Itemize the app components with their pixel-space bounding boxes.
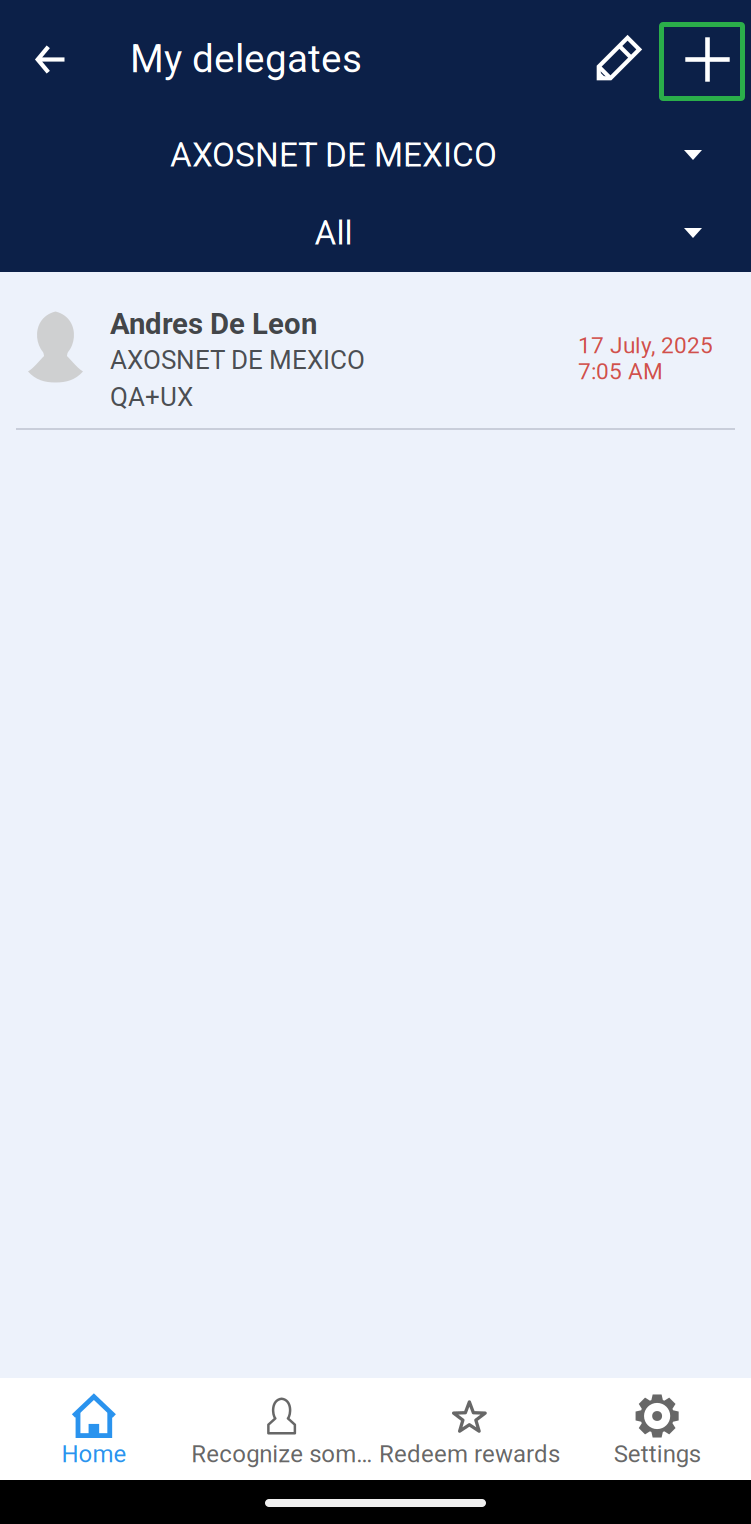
staticText: Andres De Leon: [110, 307, 317, 341]
staticText: AXOSNET DE MEXICO: [110, 345, 365, 375]
button[interactable]: Redeem rewards: [375, 1378, 563, 1480]
button[interactable]: Back: [0, 0, 82, 116]
button[interactable]: Home: [0, 1378, 188, 1480]
button[interactable]: Add delegate: [659, 0, 751, 116]
staticText: 7:05 AM: [578, 358, 663, 385]
staticText: 17 July, 2025: [578, 332, 713, 359]
staticText: Redeem rewards: [379, 1440, 560, 1468]
staticText: QA+UX: [110, 382, 193, 412]
staticText: All: [314, 213, 352, 253]
staticText: AXOSNET DE MEXICO: [170, 135, 497, 175]
button[interactable]: Settings: [563, 1378, 751, 1480]
button[interactable]: Recognize som…: [188, 1378, 376, 1480]
button[interactable]: AXOSNET DE MEXICO: [0, 116, 751, 194]
staticText: Settings: [614, 1440, 701, 1468]
button[interactable]: Andres De Leon: [0, 272, 751, 428]
staticText: Home: [61, 1440, 126, 1468]
staticText: My delegates: [130, 36, 362, 82]
button[interactable]: All: [0, 194, 751, 272]
button[interactable]: Edit: [588, 0, 659, 116]
staticText: Recognize som…: [191, 1440, 372, 1468]
